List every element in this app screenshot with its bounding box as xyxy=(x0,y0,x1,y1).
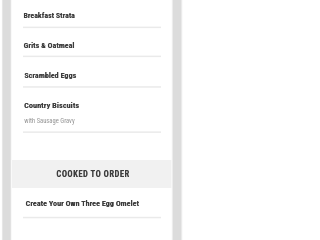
button[interactable]: Create Your Own Three Egg Omelet xyxy=(12,188,172,218)
button[interactable]: Country Biscuits, with Sausage Gravy xyxy=(12,87,172,133)
button[interactable]: Scrambled Eggs xyxy=(12,57,172,88)
button[interactable]: Cooked to Order section xyxy=(12,160,172,188)
button[interactable]: Breakfast Strata xyxy=(12,2,172,28)
button[interactable]: Grits & Oatmeal xyxy=(12,28,172,57)
